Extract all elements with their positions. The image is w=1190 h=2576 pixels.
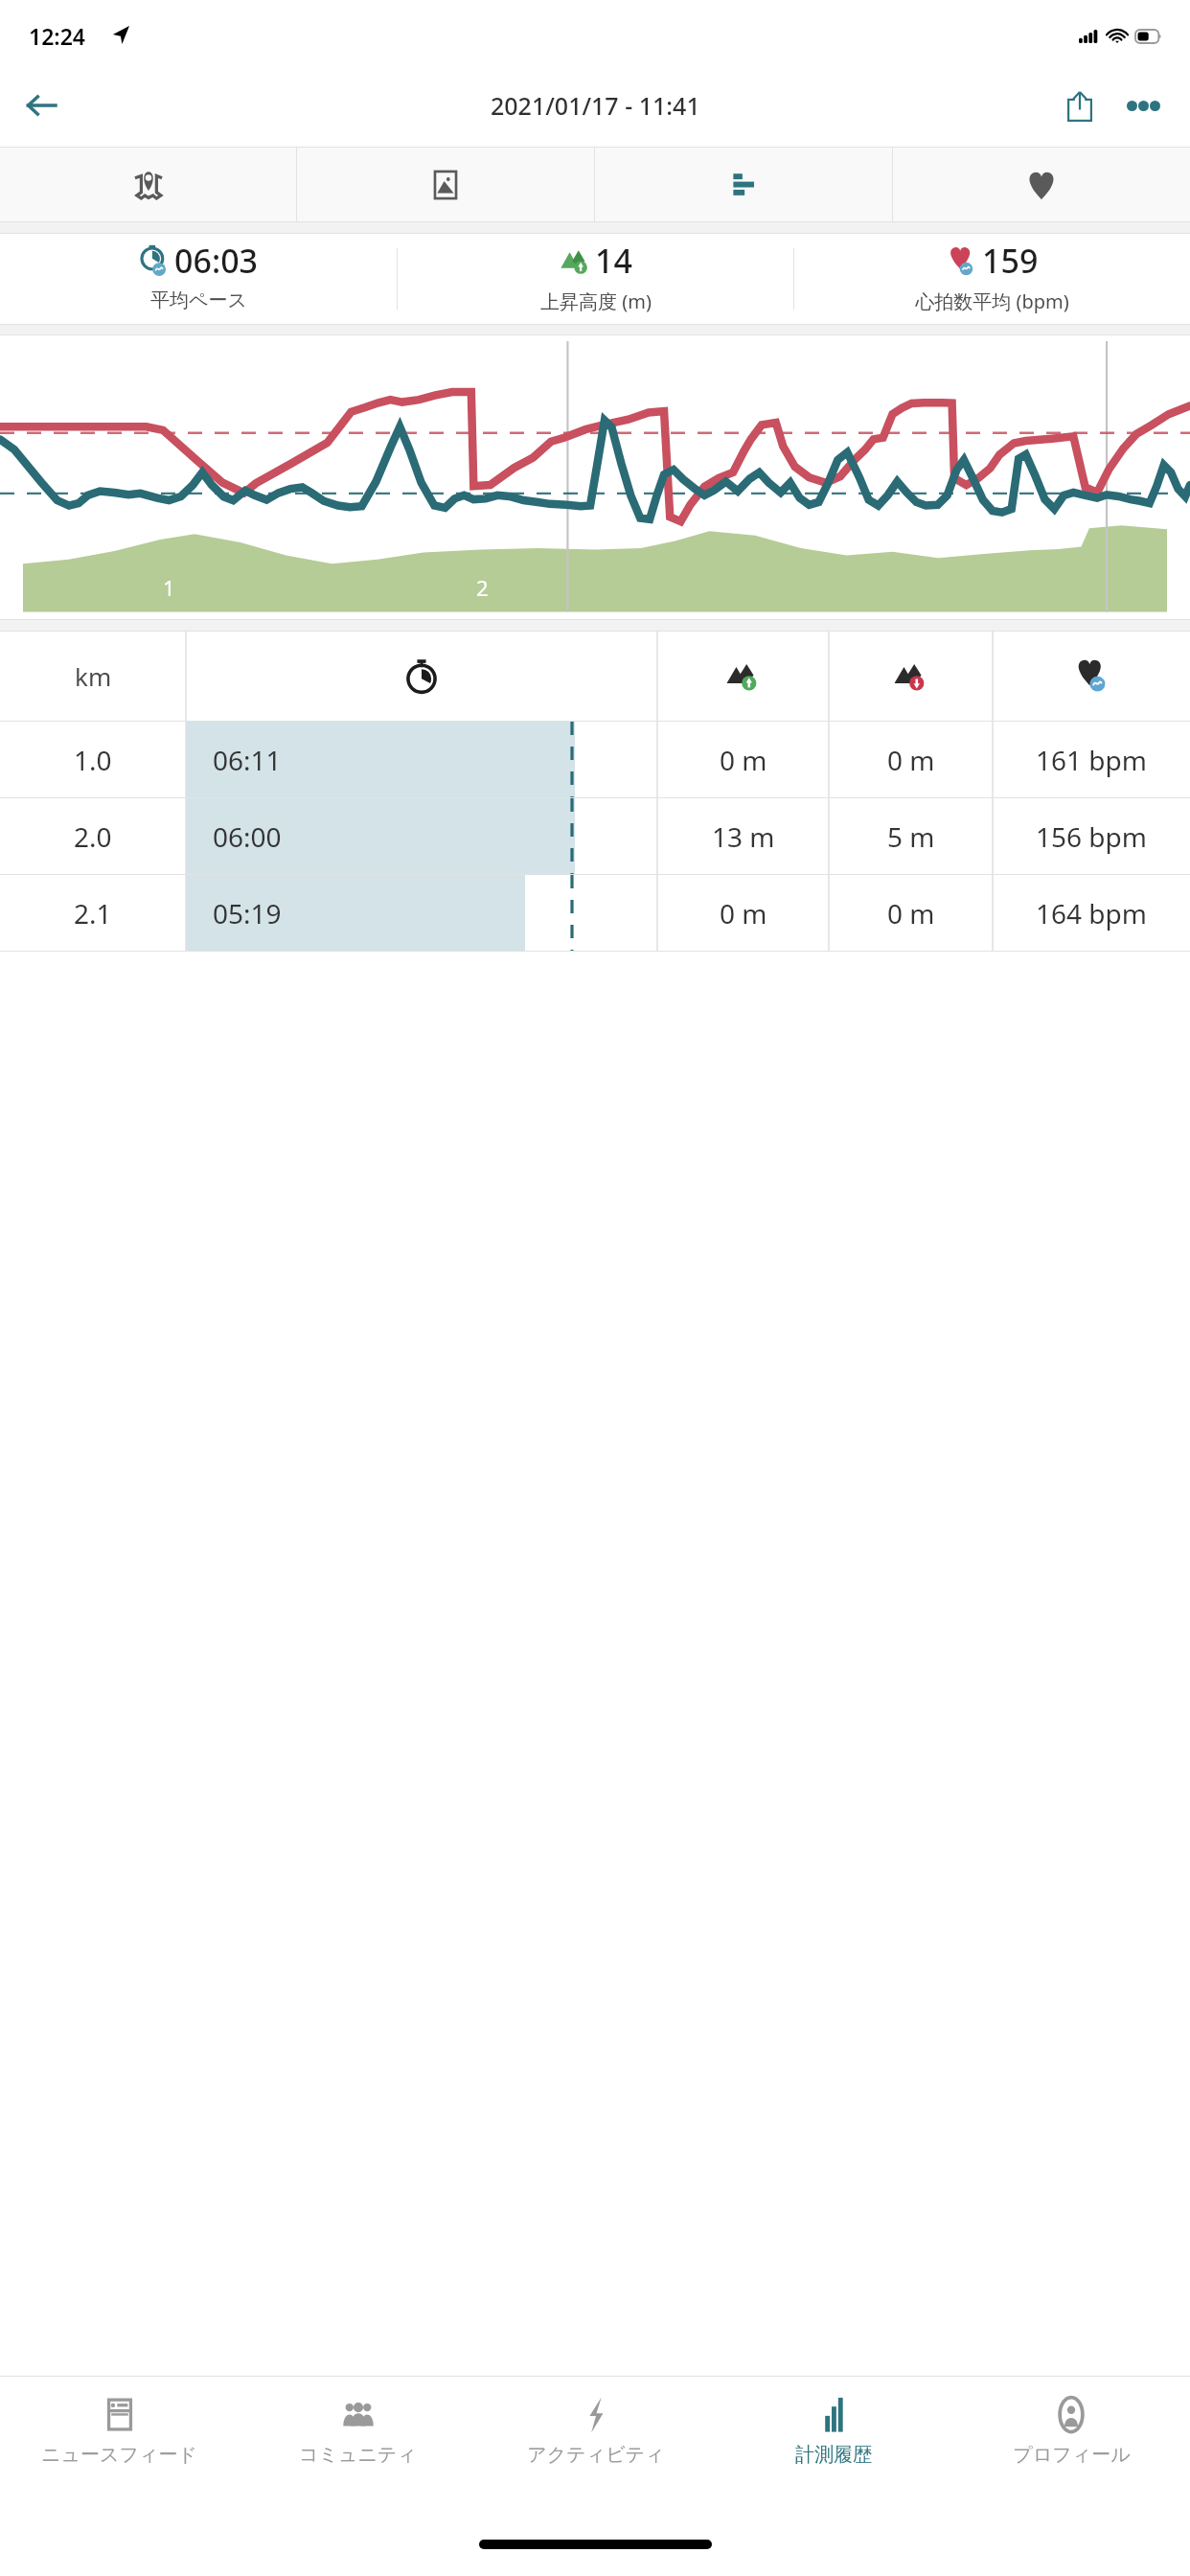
staticText: 0 m <box>887 895 935 931</box>
button[interactable]: Photos <box>297 148 594 221</box>
button[interactable]: 159 <box>794 234 1190 324</box>
staticText: 06:11 <box>213 742 282 778</box>
staticText: コミュニティ <box>299 2443 417 2467</box>
staticText: 14 <box>595 239 632 283</box>
button[interactable]: 2.0 <box>0 798 1190 874</box>
staticText: 上昇高度 (m) <box>540 288 652 314</box>
button[interactable]: 06:03 <box>0 234 397 324</box>
staticText: 12:24 <box>29 21 85 51</box>
staticText: ニュースフィード <box>41 2443 197 2467</box>
button[interactable]: Heart rate <box>893 148 1190 221</box>
button[interactable]: プロフィール <box>952 2377 1190 2518</box>
staticText: アクティビティ <box>527 2443 665 2467</box>
button[interactable]: Map <box>0 148 296 221</box>
staticText: 159 <box>982 239 1039 283</box>
staticText: 05:19 <box>213 895 282 931</box>
staticText: 0 m <box>887 742 935 778</box>
staticText: 06:03 <box>174 239 259 283</box>
staticText: 1 <box>163 573 175 602</box>
button[interactable]: 1 <box>0 335 1190 619</box>
staticText: プロフィール <box>1013 2443 1131 2467</box>
staticText: 13 m <box>712 818 775 855</box>
staticText: 心拍数平均 (bpm) <box>915 288 1069 314</box>
staticText: 161 bpm <box>1036 742 1147 778</box>
button[interactable]: 14 <box>398 234 793 324</box>
staticText: km <box>75 659 112 693</box>
button[interactable]: 1.0 <box>0 722 1190 797</box>
button[interactable]: ニュースフィード <box>0 2377 239 2518</box>
staticText: 0 m <box>720 895 767 931</box>
staticText: 0 m <box>720 742 767 778</box>
button[interactable]: Charts <box>595 148 892 221</box>
staticText: 2.1 <box>74 895 112 931</box>
button[interactable]: 2.1 <box>0 875 1190 951</box>
staticText: 1.0 <box>74 742 112 778</box>
staticText: 06:00 <box>213 818 282 855</box>
button[interactable]: Back <box>11 76 71 135</box>
staticText: 2 <box>476 573 489 602</box>
staticText: 156 bpm <box>1036 818 1147 855</box>
staticText: 平均ペース <box>150 288 247 312</box>
button[interactable]: Share <box>1048 74 1111 137</box>
button[interactable]: コミュニティ <box>239 2377 477 2518</box>
staticText: 2.0 <box>74 818 112 855</box>
button[interactable]: アクティビティ <box>477 2377 715 2518</box>
staticText: 5 m <box>887 818 935 855</box>
staticText: 164 bpm <box>1036 895 1147 931</box>
staticText: 2021/01/17 - 11:41 <box>491 89 700 122</box>
button[interactable]: More options <box>1111 74 1175 137</box>
staticText: 計測履歴 <box>795 2443 872 2467</box>
button[interactable]: 計測履歴 <box>715 2377 952 2518</box>
